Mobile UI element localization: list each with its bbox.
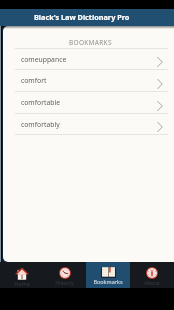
other: History [59, 267, 71, 279]
staticText: History [55, 279, 74, 286]
other: Home [15, 267, 29, 280]
other: About [146, 267, 158, 279]
staticText: comfortable [21, 98, 61, 107]
staticText: BOOKMARKS [69, 38, 112, 47]
staticText: Bookmarks [93, 278, 123, 285]
staticText: comfortably [21, 120, 60, 129]
button[interactable]: comeuppance [3, 49, 174, 69]
button[interactable]: Bookmarks [86, 262, 130, 288]
staticText: Black's Law Dictionary Pro [34, 12, 130, 22]
button[interactable]: comfort [3, 70, 174, 91]
other: Bookmarks [101, 267, 116, 278]
button[interactable]: comfortably [3, 114, 174, 134]
button[interactable]: History [43, 262, 86, 288]
staticText: Home [14, 280, 30, 287]
button[interactable]: Home [0, 262, 43, 288]
staticText: About [144, 279, 160, 286]
staticText: comfort [21, 76, 47, 85]
button[interactable]: About [130, 262, 174, 288]
button[interactable]: comfortable [3, 92, 174, 113]
staticText: comeuppance [21, 55, 67, 64]
